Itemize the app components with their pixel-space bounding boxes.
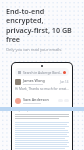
staticText: James Wong <box>23 78 45 83</box>
staticText: Search in Auberge Bordeaux <box>23 70 63 74</box>
button[interactable]: James Wong <box>12 76 72 95</box>
staticText: End-to-end encrypted, <box>6 6 78 25</box>
button[interactable]: More <box>64 99 69 102</box>
staticText: Hi James, <box>15 108 29 112</box>
staticText: privacy-first, 10 GB free <box>6 25 78 44</box>
staticText: Only you can read your emails. <box>6 47 63 52</box>
other: Account <box>63 71 66 74</box>
staticText: Jun 14 <box>60 80 69 84</box>
button[interactable]: Sara Anderson <box>12 95 72 106</box>
button[interactable]: Menu <box>15 68 69 76</box>
button[interactable]: Reply <box>58 99 63 102</box>
staticText: Sara Anderson <box>23 97 49 102</box>
staticText: Hi Mark, Thanks so much for creating tod… <box>15 87 69 91</box>
